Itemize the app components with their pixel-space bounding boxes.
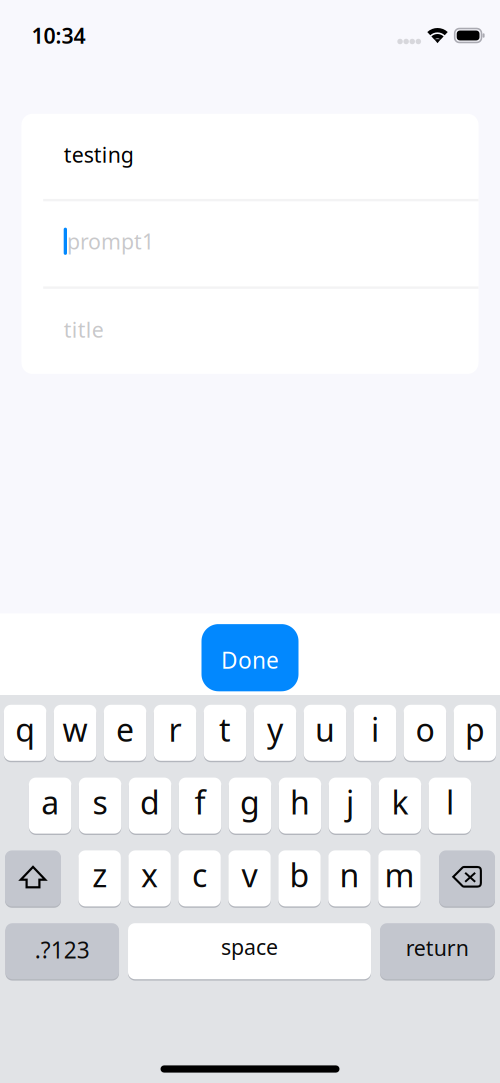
button[interactable]: o xyxy=(404,705,446,761)
button[interactable]: j xyxy=(329,778,371,834)
staticText: d xyxy=(140,781,160,823)
staticText: y xyxy=(267,708,283,751)
button[interactable]: g xyxy=(229,778,271,834)
button[interactable]: return xyxy=(380,923,495,979)
staticText: m xyxy=(384,854,414,896)
staticText: testing xyxy=(64,140,134,168)
button[interactable]: t xyxy=(204,705,246,761)
button[interactable]: n xyxy=(328,850,371,906)
staticText: f xyxy=(194,781,205,823)
staticText: return xyxy=(406,933,469,962)
staticText: z xyxy=(92,854,107,896)
staticText: r xyxy=(169,708,182,751)
staticText: 10:34 xyxy=(31,21,85,50)
staticText: i xyxy=(371,708,379,751)
button[interactable]: k xyxy=(379,778,421,834)
button[interactable]: p xyxy=(454,705,496,761)
staticText: o xyxy=(415,708,434,751)
button[interactable]: Delete xyxy=(439,850,495,906)
staticText: h xyxy=(290,781,310,823)
button[interactable]: Done xyxy=(201,624,298,691)
staticText: t xyxy=(219,708,231,751)
button[interactable]: r xyxy=(154,705,196,761)
staticText: a xyxy=(41,781,59,823)
staticText: title xyxy=(64,315,104,343)
button[interactable]: space xyxy=(128,923,371,979)
staticText: space xyxy=(221,932,278,961)
staticText: g xyxy=(240,781,260,823)
button[interactable]: z xyxy=(78,850,121,906)
staticText: v xyxy=(242,854,258,896)
staticText: x xyxy=(141,854,158,896)
button[interactable]: title xyxy=(21,289,478,374)
button[interactable]: a xyxy=(29,778,71,834)
button[interactable]: u xyxy=(304,705,346,761)
button[interactable]: v xyxy=(228,850,271,906)
staticText: b xyxy=(289,854,309,896)
button[interactable]: testing xyxy=(21,114,478,199)
button[interactable]: h xyxy=(279,778,321,834)
button[interactable]: .?123 xyxy=(5,923,119,979)
staticText: s xyxy=(93,781,108,823)
staticText: u xyxy=(315,708,335,751)
button[interactable]: x xyxy=(128,850,171,906)
button[interactable]: prompt1 xyxy=(21,201,478,286)
staticText: j xyxy=(346,781,354,823)
button[interactable]: Shift xyxy=(5,850,61,906)
staticText: p xyxy=(465,708,485,751)
button[interactable]: d xyxy=(129,778,171,834)
button[interactable]: y xyxy=(254,705,296,761)
button[interactable]: b xyxy=(278,850,321,906)
button[interactable]: q xyxy=(4,705,46,761)
staticText: k xyxy=(391,781,408,823)
staticText: w xyxy=(63,708,88,751)
button[interactable]: f xyxy=(179,778,221,834)
staticText: n xyxy=(339,854,359,896)
button[interactable]: s xyxy=(79,778,121,834)
staticText: l xyxy=(446,781,454,823)
button[interactable]: m xyxy=(378,850,421,906)
button[interactable]: i xyxy=(354,705,396,761)
staticText: Done xyxy=(221,645,279,675)
button[interactable]: l xyxy=(429,778,471,834)
button[interactable]: w xyxy=(54,705,96,761)
staticText: prompt1 xyxy=(67,227,154,255)
button[interactable]: e xyxy=(104,705,146,761)
button[interactable]: c xyxy=(178,850,221,906)
staticText: e xyxy=(116,708,134,751)
staticText: .?123 xyxy=(35,935,90,965)
staticText: c xyxy=(192,854,207,896)
staticText: q xyxy=(15,708,35,751)
